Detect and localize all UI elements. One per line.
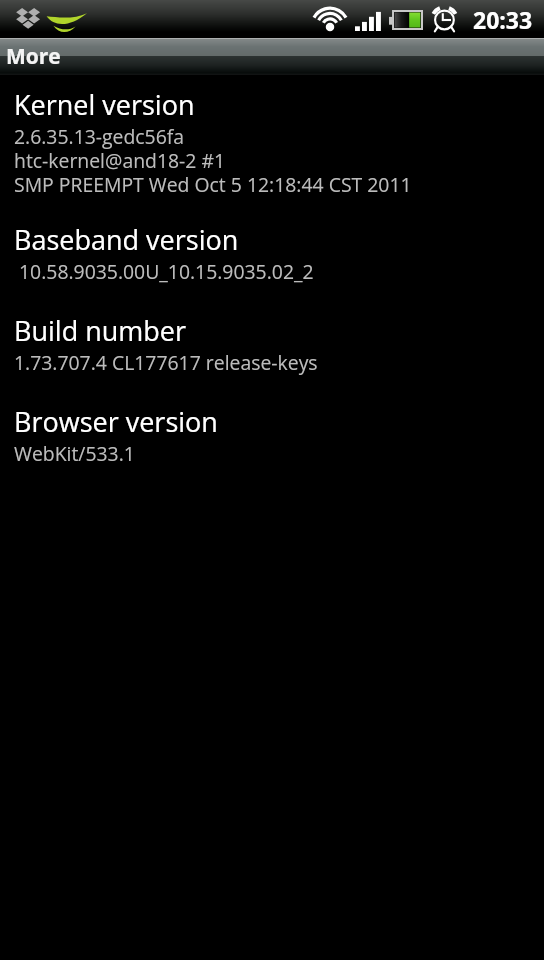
button[interactable]: Baseband version [0, 215, 544, 286]
staticText: 1.73.707.4 CL177617 release-keys [14, 349, 318, 375]
staticText: htc-kernel@and18-2 #1 [14, 147, 226, 173]
staticText: Build number [14, 312, 186, 349]
button[interactable]: Build number [0, 306, 544, 377]
staticText: 20:33 [473, 4, 533, 35]
other: App notification [46, 11, 87, 33]
other: Dropbox notification [16, 8, 40, 29]
button[interactable]: More [0, 38, 544, 75]
staticText: Baseband version [14, 221, 239, 258]
other: Alarm set [432, 4, 457, 30]
staticText: Kernel version [14, 86, 195, 123]
button[interactable]: Browser version [0, 397, 544, 468]
staticText: Browser version [14, 403, 218, 440]
staticText: WebKit/533.1 [14, 440, 135, 466]
staticText: 10.58.9035.00U_10.15.9035.02_2 [14, 258, 314, 284]
button[interactable]: Kernel version [0, 80, 544, 199]
other: Battery level [389, 10, 423, 30]
staticText: 2.6.35.13-gedc56fa [14, 123, 185, 149]
other: Mobile signal strength [355, 12, 381, 31]
staticText: SMP PREEMPT Wed Oct 5 12:18:44 CST 2011 [14, 171, 412, 197]
other: Wi-Fi connected [310, 4, 350, 32]
staticText: More [6, 42, 61, 71]
